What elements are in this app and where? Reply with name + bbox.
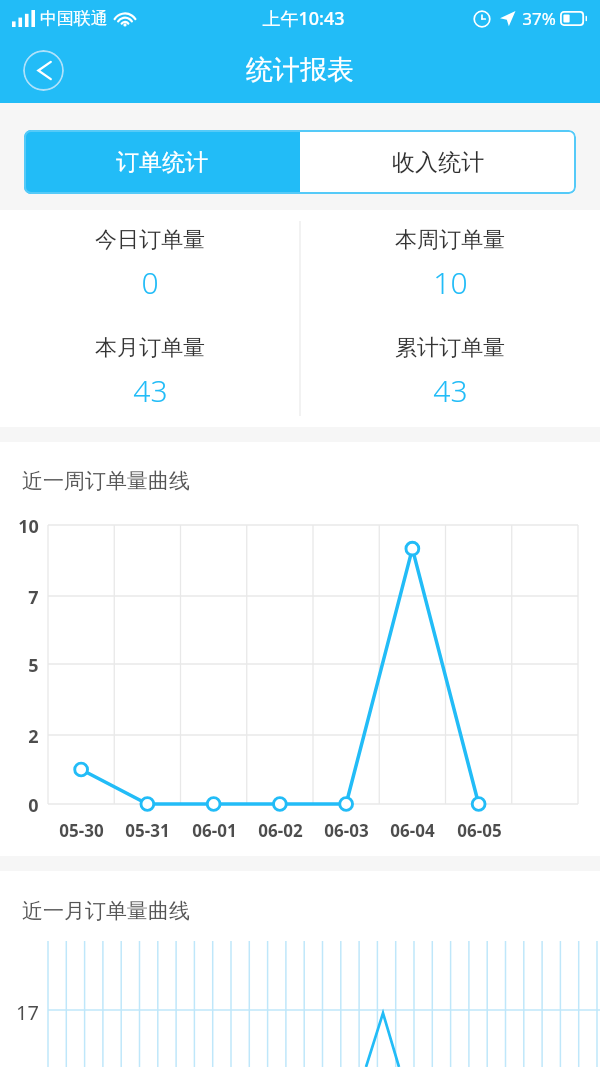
staticText: 0 <box>141 262 159 303</box>
staticText: 10 <box>18 514 39 539</box>
staticText: 7 <box>28 585 39 610</box>
staticText: 06-01 <box>192 819 237 842</box>
staticText: 5 <box>28 653 39 678</box>
staticText: 06-02 <box>258 819 303 842</box>
staticText: 43 <box>133 370 168 411</box>
staticText: 上午10:43 <box>262 6 345 31</box>
staticText: 06-04 <box>390 819 435 842</box>
staticText: 05-31 <box>125 819 170 842</box>
button[interactable]: 订单统计 <box>24 130 300 194</box>
button[interactable]: 收入统计 <box>300 130 576 194</box>
staticText: 本周订单量 <box>395 226 505 254</box>
staticText: 收入统计 <box>392 148 484 177</box>
staticText: 0 <box>28 793 39 818</box>
staticText: 06-05 <box>457 819 502 842</box>
staticText: 订单统计 <box>116 148 208 177</box>
staticText: 17 <box>16 999 39 1026</box>
staticText: 2 <box>28 724 39 749</box>
staticText: 06-03 <box>324 819 369 842</box>
staticText: 今日订单量 <box>95 226 205 254</box>
button[interactable]: 本月订单量 <box>0 318 300 427</box>
button[interactable]: 本周订单量 <box>300 210 600 318</box>
button[interactable]: 累计订单量 <box>300 318 600 427</box>
staticText: 累计订单量 <box>395 334 505 362</box>
staticText: 10 <box>433 262 468 303</box>
button[interactable]: 今日订单量 <box>0 210 300 318</box>
staticText: 近一月订单量曲线 <box>22 898 190 924</box>
staticText: 统计报表 <box>246 53 354 87</box>
staticText: 本月订单量 <box>95 334 205 362</box>
staticText: 05-30 <box>59 819 104 842</box>
staticText: 43 <box>433 370 468 411</box>
staticText: 37% <box>522 7 556 30</box>
staticText: 近一周订单量曲线 <box>22 468 190 494</box>
button[interactable]: Back <box>23 50 64 91</box>
staticText: 中国联通 <box>40 8 108 29</box>
